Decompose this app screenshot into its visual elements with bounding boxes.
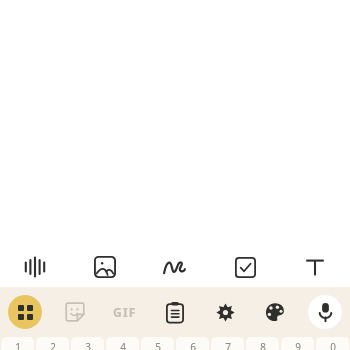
staticText: 8 [260,340,266,350]
button[interactable]: Voice typing [0,244,70,290]
button[interactable]: 7 [211,337,244,350]
button[interactable]: Checklist [210,244,280,290]
button[interactable]: 4 [106,337,139,350]
staticText: 6 [190,340,196,350]
button[interactable]: 1 [1,337,34,350]
button[interactable]: Text formatting [280,244,350,290]
button[interactable]: 8 [246,337,279,350]
staticText: GIF [113,304,137,320]
button[interactable]: GIF [100,287,150,337]
button[interactable]: Stickers [50,287,100,337]
button[interactable]: Clipboard [150,287,200,337]
staticText: 1 [15,340,21,350]
button[interactable]: Settings [200,287,250,337]
staticText: 3 [85,340,91,350]
button[interactable]: Voice input [308,295,342,329]
button[interactable]: 0 [316,337,349,350]
button[interactable]: 2 [36,337,69,350]
staticText: 5 [155,340,161,350]
staticText: 9 [295,340,301,350]
button[interactable]: 5 [141,337,174,350]
button[interactable]: Insert image [70,244,140,290]
button[interactable]: Themes [250,287,300,337]
button[interactable]: 9 [281,337,314,350]
staticText: 2 [50,340,56,350]
staticText: 7 [225,340,231,350]
staticText: 0 [330,340,336,350]
staticText: 4 [120,340,126,350]
button[interactable]: Keyboard modes [8,295,42,329]
button[interactable]: Handwriting [140,244,210,290]
button[interactable]: 6 [176,337,209,350]
button[interactable]: 3 [71,337,104,350]
